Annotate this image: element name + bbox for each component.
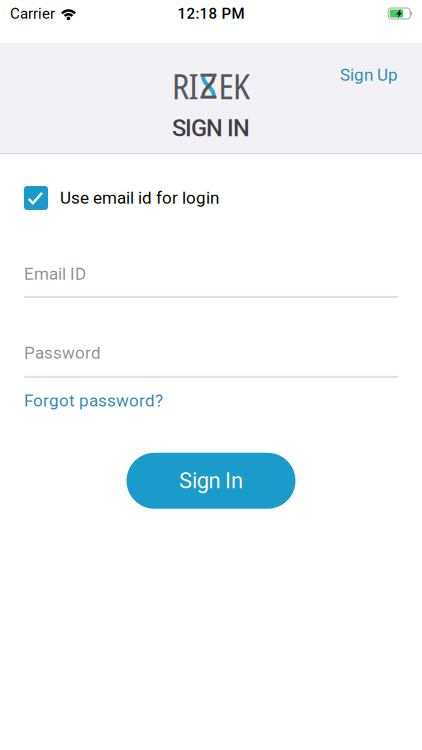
staticText: Email ID <box>24 264 86 284</box>
staticText: 12:18 PM <box>177 5 244 22</box>
staticText: Forgot password? <box>24 391 163 411</box>
staticText: Sign In <box>179 468 243 494</box>
staticText: Sign Up <box>340 65 398 85</box>
staticText: RI <box>172 63 198 109</box>
staticText: EK <box>218 63 250 109</box>
staticText: SIGN IN <box>172 114 250 142</box>
staticText: Use email id for login <box>60 188 219 208</box>
staticText: Password <box>24 343 101 363</box>
staticText: Carrier <box>10 5 55 22</box>
